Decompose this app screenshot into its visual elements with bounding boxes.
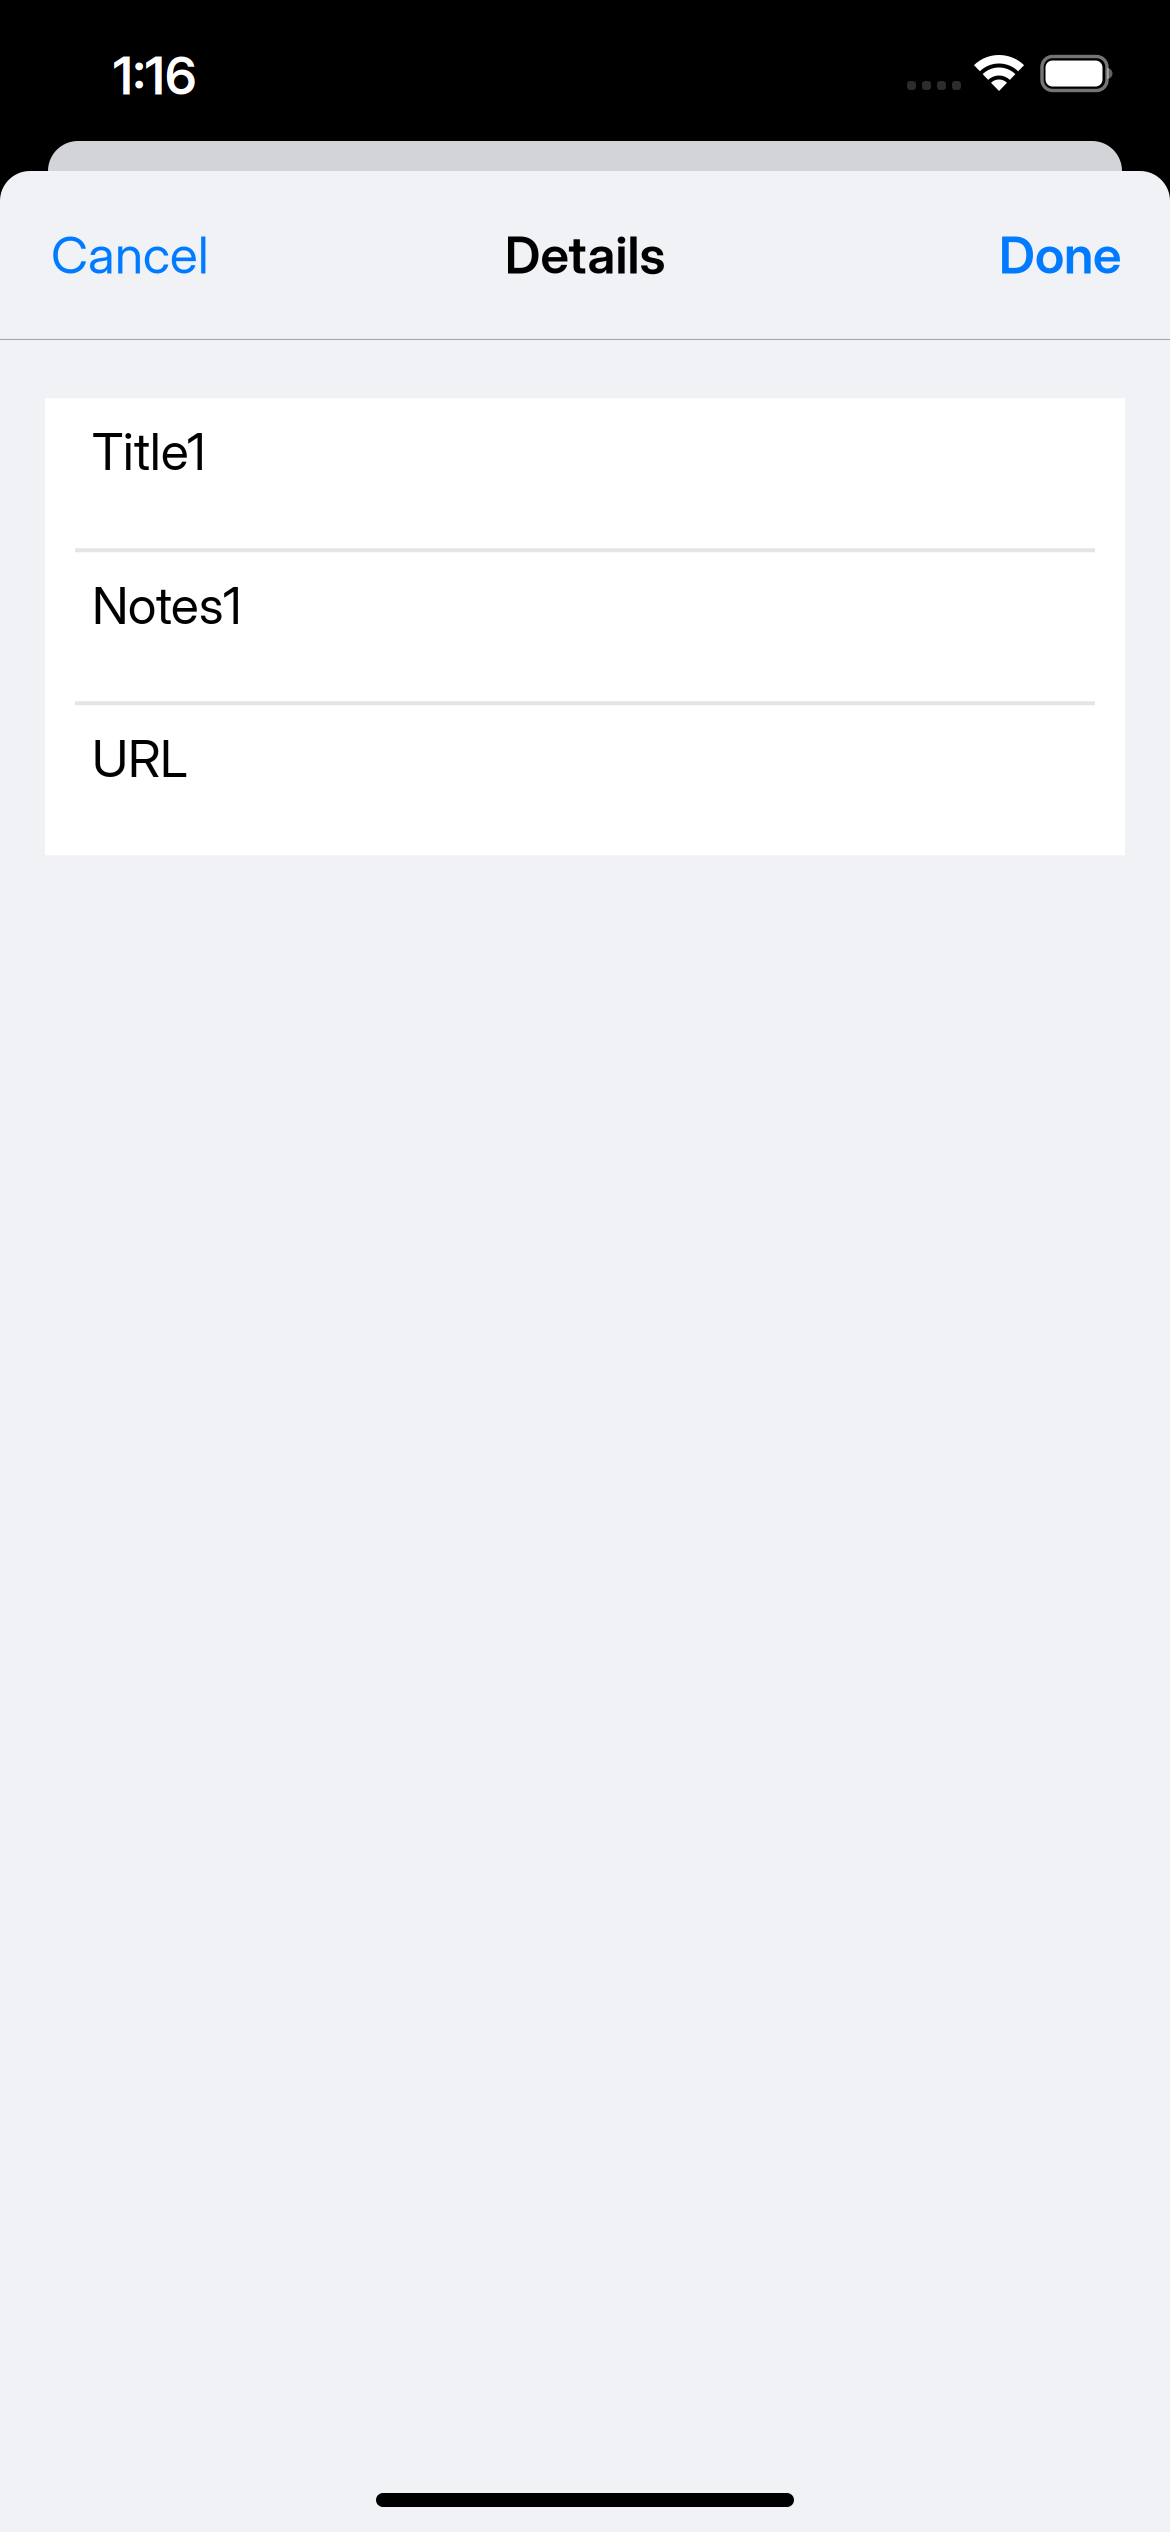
- staticText: Done: [999, 224, 1121, 286]
- button[interactable]: Done: [950, 192, 1170, 318]
- staticText: Details: [504, 224, 665, 286]
- staticText: Cancel: [51, 224, 209, 286]
- staticText: URL: [92, 727, 187, 789]
- button[interactable]: Title1: [45, 398, 1125, 548]
- button[interactable]: Cancel: [0, 192, 260, 318]
- staticText: Notes1: [92, 574, 242, 636]
- button[interactable]: URL: [45, 705, 1125, 855]
- button[interactable]: Notes1: [45, 552, 1125, 701]
- staticText: Title1: [92, 420, 206, 482]
- staticText: 1:16: [113, 44, 197, 107]
